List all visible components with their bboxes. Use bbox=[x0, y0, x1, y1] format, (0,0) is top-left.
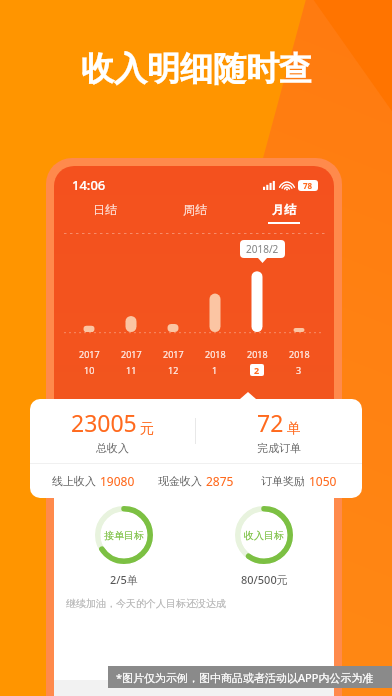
staticText: 1050 bbox=[309, 473, 337, 489]
button[interactable]: 月结 bbox=[239, 202, 328, 224]
staticText: 总收入 bbox=[96, 441, 129, 455]
staticText: 线上收入 bbox=[52, 474, 96, 488]
staticText: 2875 bbox=[206, 473, 234, 489]
staticText: 2/5单 bbox=[110, 572, 138, 587]
staticText: 2018 bbox=[247, 348, 268, 360]
staticText: 收入明细随时查 bbox=[81, 48, 312, 90]
staticText: 单 bbox=[287, 420, 301, 438]
staticText: 现金收入 bbox=[158, 474, 202, 488]
staticText: 1 bbox=[212, 364, 218, 376]
staticText: 12 bbox=[168, 364, 179, 376]
staticText: 元 bbox=[140, 420, 154, 438]
staticText: 80/500元 bbox=[241, 572, 288, 587]
staticText: 日结 bbox=[93, 202, 117, 217]
staticText: 14:06 bbox=[72, 176, 106, 194]
staticText: 继续加油，今天的个人目标还没达成 bbox=[66, 597, 226, 610]
staticText: 订单奖励 bbox=[261, 474, 305, 488]
button[interactable]: 72 bbox=[196, 407, 362, 455]
staticText: 11 bbox=[126, 364, 137, 376]
staticText: 2018/2 bbox=[246, 242, 279, 256]
staticText: 3 bbox=[296, 364, 302, 376]
staticText: *图片仅为示例，图中商品或者活动以APP内公示为准 bbox=[116, 670, 374, 685]
staticText: 2018 bbox=[289, 348, 310, 360]
staticText: 2017 bbox=[121, 348, 142, 360]
staticText: 月结 bbox=[272, 202, 296, 217]
staticText: 2017 bbox=[79, 348, 100, 360]
staticText: 2017 bbox=[163, 348, 184, 360]
staticText: 2018 bbox=[205, 348, 226, 360]
staticText: 接单目标 bbox=[104, 529, 144, 542]
staticText: 19080 bbox=[100, 473, 135, 489]
staticText: 10 bbox=[84, 364, 95, 376]
staticText: 收入目标 bbox=[244, 529, 284, 542]
staticText: 23005 bbox=[71, 407, 137, 438]
button[interactable]: 周结 bbox=[150, 202, 239, 224]
button[interactable]: 给自己定个小目标 bbox=[54, 472, 334, 500]
staticText: 72 bbox=[257, 407, 284, 438]
staticText: 2 bbox=[254, 364, 260, 376]
staticText: 设置 bbox=[300, 479, 322, 493]
staticText: 完成订单 bbox=[257, 441, 301, 455]
button[interactable]: 日结 bbox=[60, 202, 150, 224]
button[interactable]: 23005 bbox=[30, 407, 195, 455]
staticText: 78 bbox=[303, 180, 313, 191]
staticText: 给自己定个小目标 bbox=[84, 479, 180, 494]
staticText: 周结 bbox=[183, 202, 207, 217]
